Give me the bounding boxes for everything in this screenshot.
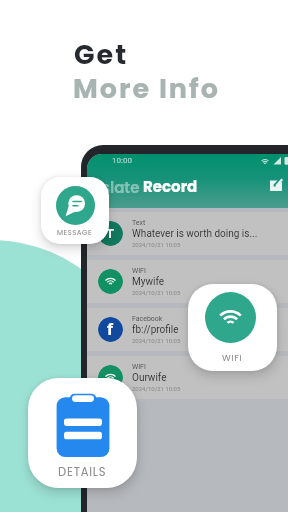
staticText: 10:00 <box>112 156 132 165</box>
button[interactable]: WIFI <box>98 356 288 399</box>
button[interactable]: Translate <box>87 177 140 198</box>
staticText: Whatever is worth doing is... <box>132 228 258 240</box>
staticText: More Info <box>73 70 220 108</box>
button[interactable]: f <box>98 308 288 351</box>
button[interactable]: DETAILS <box>28 378 137 488</box>
staticText: 2024/10/21 10:05 <box>132 337 181 344</box>
staticText: WIFI <box>222 352 243 365</box>
button[interactable]: New note <box>270 179 282 191</box>
staticText: DETAILS <box>58 464 107 480</box>
staticText: f <box>107 319 114 339</box>
button[interactable]: T <box>98 212 288 255</box>
staticText: Get <box>74 36 129 74</box>
staticText: 2024/10/21 10:05 <box>132 385 181 392</box>
button[interactable]: MESSAGE <box>41 177 109 244</box>
staticText: T <box>106 226 115 241</box>
staticText: Ourwife <box>132 372 167 384</box>
staticText: Mywife <box>132 276 165 288</box>
staticText: Facebook <box>132 315 163 323</box>
staticText: WIFI <box>132 363 146 371</box>
button[interactable]: Record <box>143 176 198 197</box>
button[interactable]: WIFI <box>188 284 277 371</box>
staticText: MESSAGE <box>57 228 93 238</box>
staticText: 2024/10/21 10:05 <box>132 289 181 296</box>
staticText: Text <box>132 219 146 227</box>
staticText: WIFI <box>132 267 146 275</box>
button[interactable]: WIFI <box>98 260 288 303</box>
staticText: 2024/10/21 10:05 <box>132 241 181 248</box>
staticText: fb://profile <box>132 324 179 336</box>
